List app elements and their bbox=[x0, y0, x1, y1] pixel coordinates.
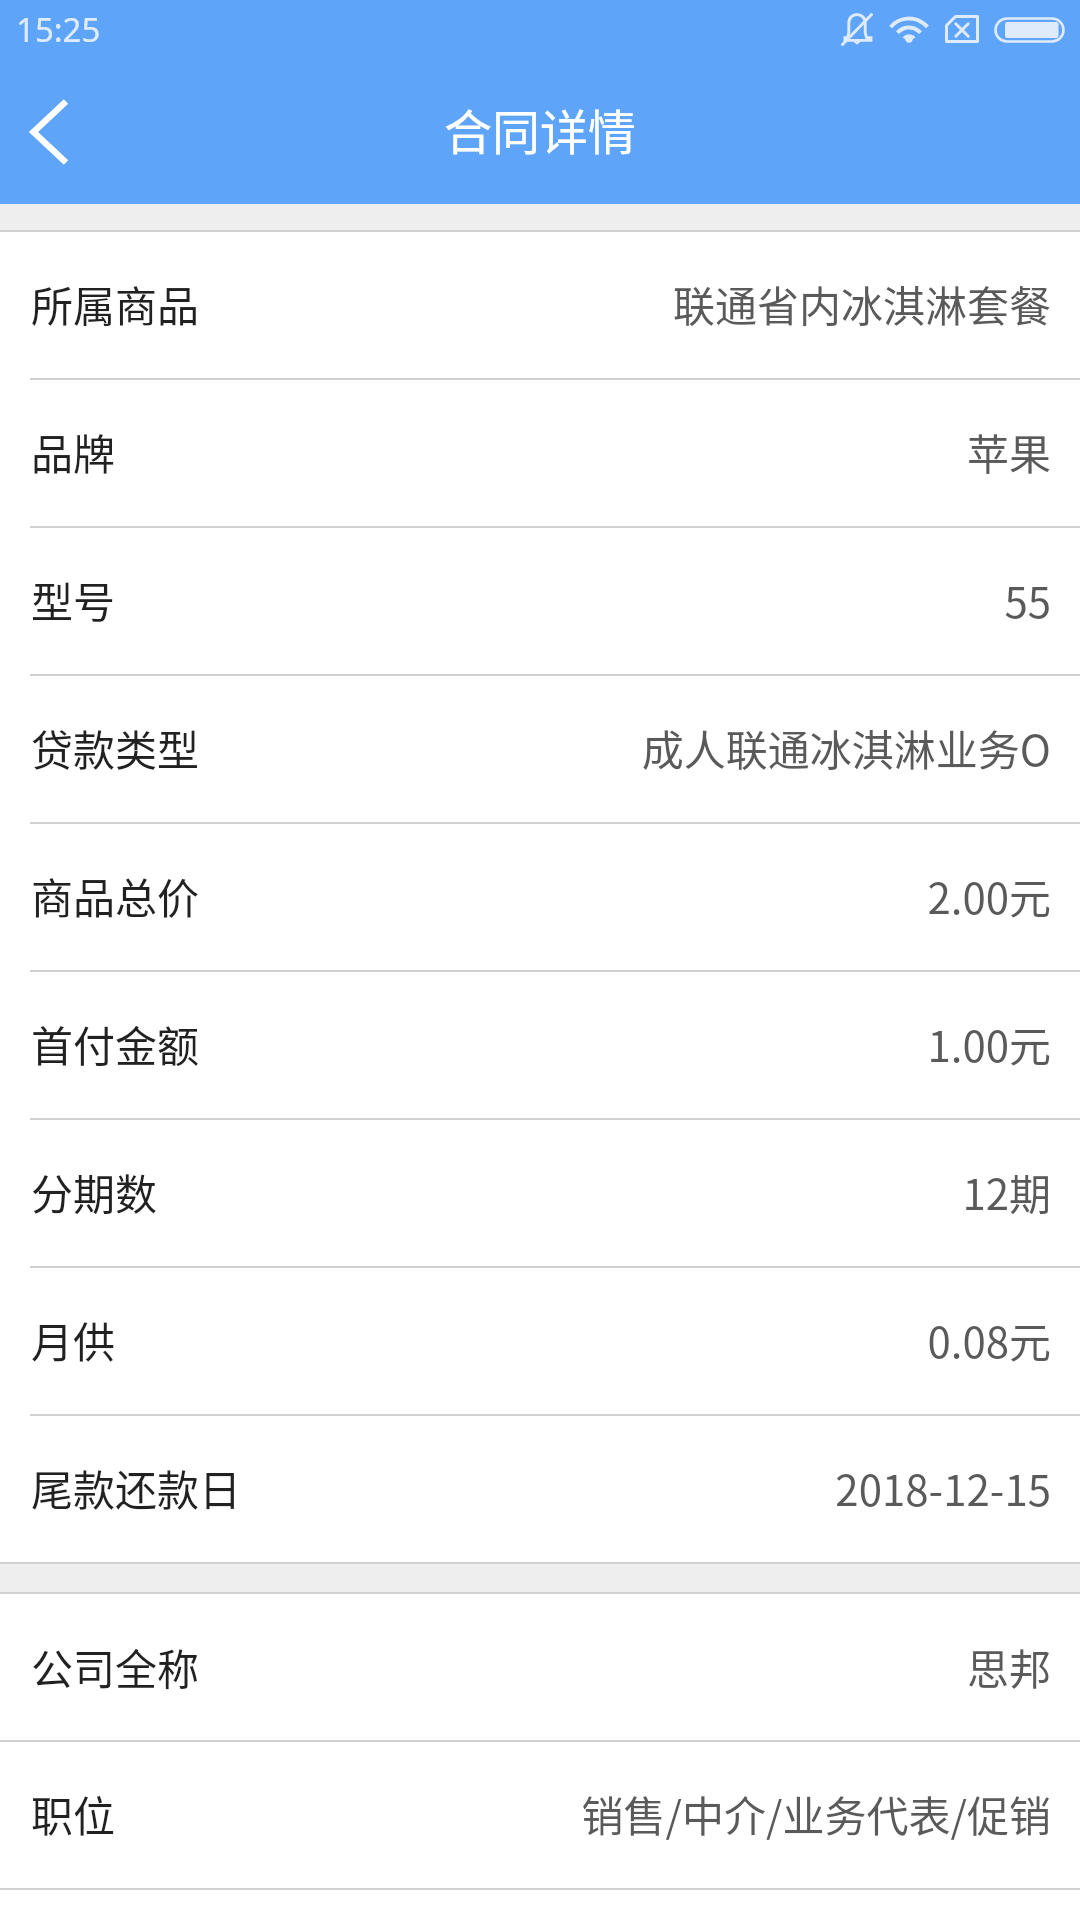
button[interactable]: Back bbox=[0, 60, 110, 204]
button[interactable]: 首付金额 bbox=[0, 970, 1080, 1118]
staticText: 15:25 bbox=[16, 7, 101, 52]
staticText: 12期 bbox=[962, 1161, 1051, 1222]
staticText: 首付金额 bbox=[31, 1013, 200, 1074]
staticText: 成人联通冰淇淋业务O bbox=[641, 717, 1051, 778]
staticText: 商品总价 bbox=[31, 865, 200, 926]
button[interactable]: 商品总价 bbox=[0, 822, 1080, 970]
staticText: 55 bbox=[1004, 569, 1051, 630]
staticText: 分期数 bbox=[31, 1161, 158, 1222]
staticText: 品牌 bbox=[31, 421, 116, 482]
staticText: 0.08元 bbox=[927, 1309, 1051, 1370]
button[interactable]: 品牌 bbox=[0, 378, 1080, 526]
staticText: 尾款还款日 bbox=[31, 1457, 242, 1518]
staticText: 联通省内冰淇淋套餐 bbox=[672, 273, 1051, 334]
button[interactable]: 所属商品 bbox=[0, 231, 1080, 378]
staticText: 销售/中介/业务代表/促销 bbox=[581, 1783, 1051, 1844]
staticText: 型号 bbox=[31, 569, 116, 630]
staticText: 月供 bbox=[31, 1309, 116, 1370]
staticText: 2018-12-15 bbox=[835, 1457, 1051, 1518]
staticText: 职位 bbox=[31, 1783, 116, 1844]
button[interactable]: 公司全称 bbox=[0, 1594, 1080, 1740]
staticText: 1.00元 bbox=[927, 1013, 1051, 1074]
staticText: 2.00元 bbox=[927, 865, 1051, 926]
button[interactable]: 分期数 bbox=[0, 1118, 1080, 1266]
button[interactable]: 月供 bbox=[0, 1266, 1080, 1414]
staticText: 思邦 bbox=[966, 1636, 1051, 1697]
staticText: 所属商品 bbox=[31, 273, 200, 334]
button[interactable]: 型号 bbox=[0, 526, 1080, 674]
staticText: 贷款类型 bbox=[31, 717, 200, 778]
staticText: 苹果 bbox=[966, 421, 1051, 482]
staticText: 合同详情 bbox=[444, 94, 637, 164]
button[interactable]: 职位 bbox=[0, 1740, 1080, 1888]
button[interactable]: 尾款还款日 bbox=[0, 1414, 1080, 1562]
staticText: 公司全称 bbox=[31, 1636, 200, 1697]
button[interactable]: 贷款类型 bbox=[0, 674, 1080, 822]
